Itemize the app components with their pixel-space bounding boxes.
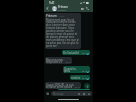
button[interactable]: Prénom	[45, 13, 81, 49]
staticText: Quand tu peux m'envoyer l'argent s'il te…	[64, 67, 81, 73]
button[interactable]: Attach	[77, 92, 81, 96]
staticText: en ligne	[58, 9, 66, 12]
staticText: Prénom	[58, 5, 68, 9]
button[interactable]: Prénom	[58, 5, 80, 12]
staticText: J'aurai 3000 JPL. Je suis certaine prête…	[46, 83, 74, 89]
staticText: ~Nom	[58, 15, 65, 18]
staticText: 09:12	[82, 70, 87, 73]
button[interactable]: Voice message	[87, 92, 91, 96]
button[interactable]: Emoji	[46, 92, 49, 95]
button[interactable]	[58, 89, 90, 90]
staticText: combien ?	[71, 76, 81, 80]
button[interactable]: Video call	[80, 6, 85, 11]
button[interactable]: Message	[51, 91, 92, 96]
staticText: Maintenant avec les et nouveau numéro ca…	[46, 18, 80, 48]
staticText: Message	[53, 92, 77, 96]
staticText: 9:41	[49, 1, 55, 5]
staticText: 09:12	[82, 77, 87, 80]
staticText: 09:12	[75, 86, 80, 89]
button[interactable]: J'aurai 3000 JPL. Je suis certaine prête…	[45, 82, 81, 89]
button[interactable]: Call	[85, 6, 90, 11]
button[interactable]: Mon nouveau téléphone et mon ordinateur …	[45, 57, 72, 64]
staticText: 09:12	[66, 61, 71, 64]
staticText: Mon nouveau téléphone et mon ordinateur …	[46, 58, 65, 64]
button[interactable]: combien ?	[70, 75, 90, 80]
button[interactable]: Back	[44, 5, 50, 12]
staticText: Prénom	[46, 14, 57, 18]
button[interactable]: Quand tu peux m'envoyer l'argent s'il te…	[63, 66, 90, 73]
staticText: 09:12	[82, 52, 87, 55]
button[interactable]: De l'actualité de quoi ?	[62, 50, 90, 55]
button[interactable]: Contact photo	[52, 6, 57, 11]
staticText: De l'actualité de quoi ?	[63, 51, 81, 55]
button[interactable]: Scroll to bottom	[84, 83, 90, 89]
button[interactable]: Camera	[82, 92, 86, 96]
